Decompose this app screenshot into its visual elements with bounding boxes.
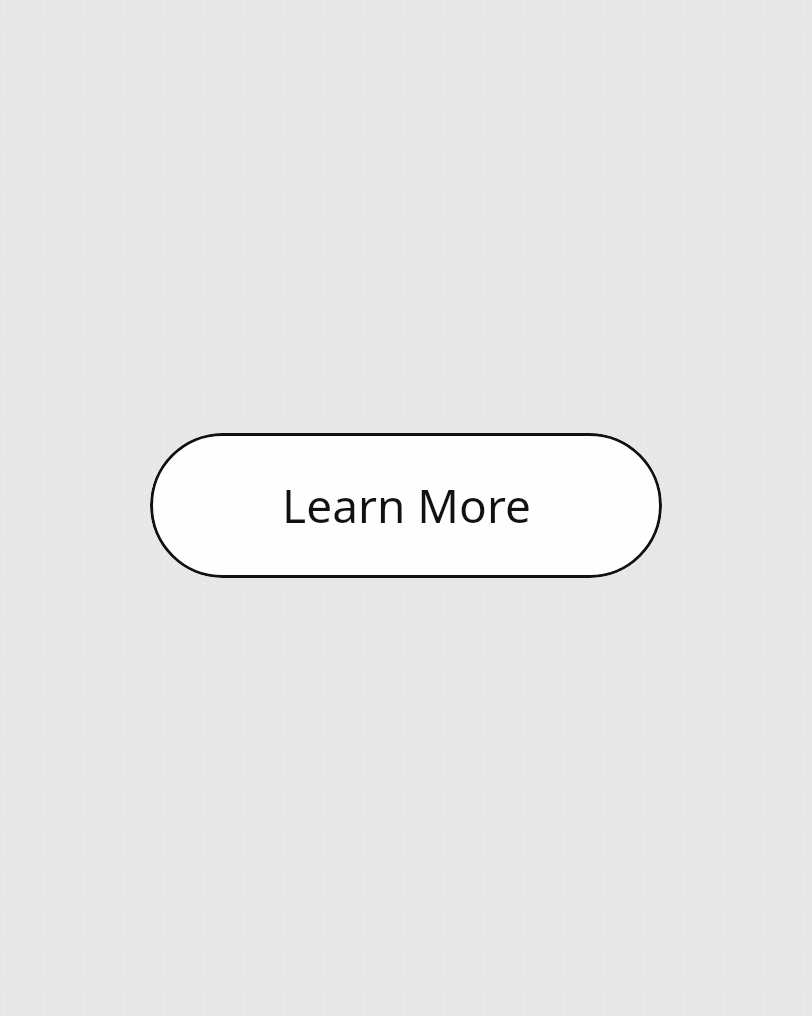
button[interactable]: Learn More — [150, 433, 662, 578]
staticText: Learn More — [282, 474, 531, 537]
